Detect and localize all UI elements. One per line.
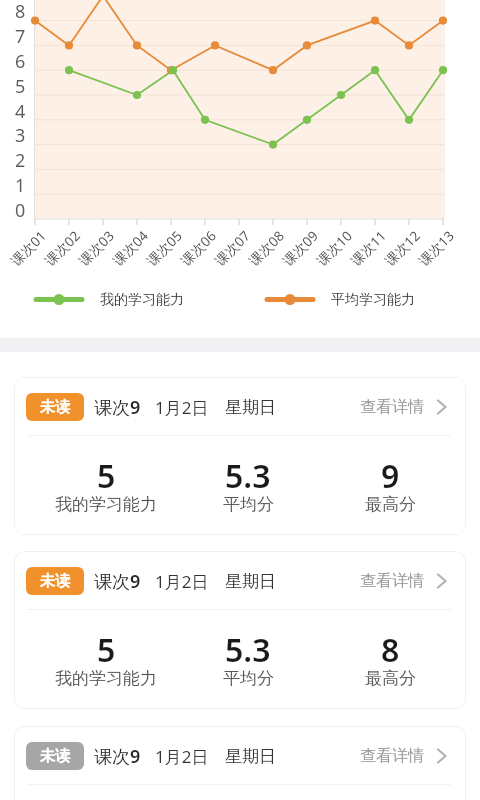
staticText: 8 (381, 628, 400, 664)
staticText: 最高分 (365, 494, 416, 514)
staticText: 查看详情 (360, 397, 424, 417)
staticText: 5 (97, 628, 116, 664)
staticText: 平均分 (223, 668, 274, 688)
staticText: 1月2日 (155, 745, 209, 768)
staticText: 课次09 (279, 226, 322, 269)
staticText: 课次06 (177, 226, 220, 269)
staticText: 星期日 (225, 746, 276, 767)
staticText: 未读 (40, 747, 70, 766)
staticText: 最高分 (365, 668, 416, 688)
staticText: 课次05 (143, 226, 186, 269)
button[interactable]: 查看详情 (360, 393, 424, 421)
staticText: 课次13 (415, 226, 458, 269)
staticText: 课次12 (381, 226, 424, 269)
staticText: 4 (15, 99, 26, 121)
staticText: 平均分 (223, 494, 274, 514)
staticText: 课次10 (313, 226, 356, 269)
staticText: 课次01 (7, 226, 50, 269)
button[interactable]: 未读 (14, 726, 466, 800)
staticText: 课次11 (347, 226, 390, 269)
staticText: 查看详情 (360, 571, 424, 591)
staticText: 6 (15, 49, 26, 71)
staticText: 我的学习能力 (100, 291, 184, 309)
staticText: 星期日 (225, 397, 276, 418)
staticText: 1 (15, 173, 26, 195)
staticText: 1月2日 (155, 396, 209, 419)
staticText: 9 (381, 454, 400, 490)
staticText: 5 (15, 74, 26, 96)
staticText: 课次04 (109, 226, 152, 269)
staticText: 7 (15, 24, 26, 46)
button[interactable]: 查看详情 (360, 567, 424, 595)
staticText: 0 (15, 198, 26, 220)
staticText: 1月2日 (155, 570, 209, 593)
staticText: 未读 (40, 398, 70, 417)
staticText: 课次07 (211, 226, 254, 269)
staticText: 课次02 (41, 226, 84, 269)
staticText: 3 (15, 123, 26, 145)
staticText: 星期日 (225, 571, 276, 592)
staticText: 查看详情 (360, 746, 424, 766)
staticText: 我的学习能力 (55, 494, 157, 514)
staticText: 5.3 (225, 454, 271, 490)
staticText: 2 (15, 148, 26, 170)
button[interactable]: 未读 (14, 377, 466, 535)
button[interactable]: 未读 (14, 551, 466, 709)
staticText: 课次03 (75, 226, 118, 269)
staticText: 5 (97, 454, 116, 490)
staticText: 我的学习能力 (55, 668, 157, 688)
staticText: 课次9 (94, 744, 141, 769)
staticText: 课次08 (245, 226, 288, 269)
staticText: 课次9 (94, 395, 141, 420)
button[interactable]: 查看详情 (360, 742, 424, 770)
staticText: 课次9 (94, 569, 141, 594)
staticText: 5.3 (225, 628, 271, 664)
staticText: 未读 (40, 572, 70, 591)
staticText: 平均学习能力 (331, 291, 415, 309)
staticText: 8 (15, 0, 26, 21)
